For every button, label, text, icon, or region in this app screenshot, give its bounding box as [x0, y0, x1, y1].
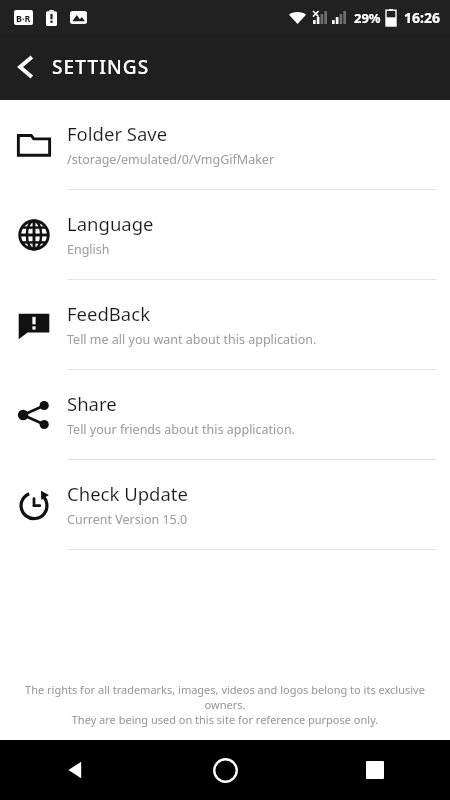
staticText: Folder Save: [67, 121, 168, 146]
staticText: 29%: [354, 9, 381, 27]
staticText: Tell me all you want about this applicat…: [67, 331, 317, 348]
button[interactable]: Language: [0, 190, 450, 280]
staticText: SETTINGS: [52, 54, 150, 80]
staticText: Current Version 15.0: [67, 511, 188, 528]
staticText: B·R: [16, 12, 31, 24]
button[interactable]: Folder Save: [0, 100, 450, 190]
staticText: /storage/emulated/0/VmgGifMaker: [67, 151, 275, 168]
button[interactable]: Back: [0, 41, 52, 93]
button[interactable]: Back: [0, 740, 150, 800]
button[interactable]: Check Update: [0, 460, 450, 550]
staticText: Check Update: [67, 481, 188, 506]
button[interactable]: FeedBack: [0, 280, 450, 370]
staticText: Tell your friends about this application…: [67, 421, 295, 438]
button[interactable]: Recent apps: [300, 740, 450, 800]
button[interactable]: Home: [150, 740, 300, 800]
staticText: The rights for all trademarks, images, v…: [14, 682, 436, 727]
staticText: English: [67, 241, 110, 258]
button[interactable]: Share: [0, 370, 450, 460]
staticText: 16:26: [404, 8, 440, 27]
staticText: Language: [67, 211, 154, 236]
staticText: FeedBack: [67, 301, 151, 326]
staticText: Share: [67, 391, 117, 416]
